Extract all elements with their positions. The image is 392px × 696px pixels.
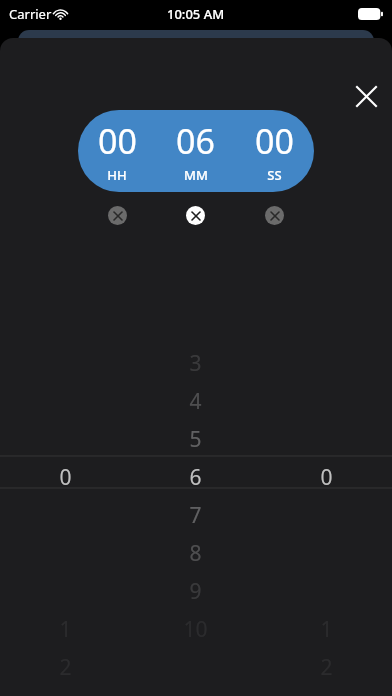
- staticText: 00: [98, 118, 137, 164]
- staticText: 2: [320, 653, 333, 682]
- staticText: 9: [189, 577, 202, 606]
- staticText: 3: [189, 349, 202, 378]
- staticText: 2: [59, 653, 72, 682]
- staticText: HH: [107, 166, 127, 184]
- staticText: MM: [184, 166, 208, 184]
- button[interactable]: 00: [78, 110, 314, 192]
- staticText: 10: [183, 615, 208, 644]
- staticText: 10:05 AM: [167, 5, 225, 23]
- button[interactable]: Close: [348, 78, 384, 114]
- staticText: 4: [189, 387, 202, 416]
- button[interactable]: 0: [0, 38, 130, 696]
- staticText: 0: [320, 463, 333, 492]
- staticText: 8: [189, 539, 202, 568]
- button[interactable]: 0: [261, 38, 392, 696]
- staticText: SS: [267, 166, 282, 184]
- staticText: 00: [255, 118, 294, 164]
- button[interactable]: Clear hours: [108, 206, 127, 225]
- button[interactable]: Clear minutes: [186, 206, 205, 225]
- button[interactable]: Clear seconds: [265, 206, 284, 225]
- staticText: 1: [59, 615, 72, 644]
- button[interactable]: 3: [130, 38, 261, 696]
- staticText: 06: [176, 118, 215, 164]
- staticText: 6: [189, 463, 202, 492]
- staticText: Carrier: [9, 5, 52, 23]
- staticText: 1: [320, 615, 333, 644]
- staticText: 0: [59, 463, 72, 492]
- staticText: 5: [189, 425, 202, 454]
- staticText: 7: [189, 501, 202, 530]
